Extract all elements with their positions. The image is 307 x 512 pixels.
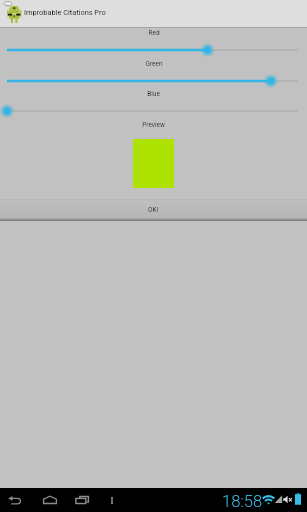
staticText: 18:58 [222, 492, 263, 511]
staticText: Preview [142, 121, 165, 129]
staticText: Blue [147, 90, 160, 98]
staticText: OK! [148, 206, 159, 214]
button[interactable]: Back [4, 488, 25, 512]
button[interactable] [0, 40, 307, 60]
staticText: Red [148, 29, 160, 37]
button[interactable]: More options [103, 488, 121, 512]
button[interactable] [0, 101, 307, 121]
staticText: Green [145, 60, 163, 68]
button[interactable]: OK! [0, 199, 307, 220]
button[interactable]: Recent apps [71, 488, 92, 512]
button[interactable]: Home [39, 488, 60, 512]
button[interactable] [0, 71, 307, 91]
staticText: Improbable Citations Pro [24, 8, 106, 17]
